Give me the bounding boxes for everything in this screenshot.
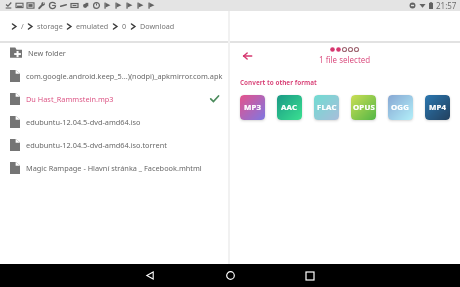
button[interactable]: Home xyxy=(190,264,270,287)
staticText: 1 file selected xyxy=(319,54,371,65)
button[interactable]: Back xyxy=(238,47,256,65)
staticText: emulated xyxy=(76,21,109,31)
button[interactable]: Du Hast_Rammstein.mp3 xyxy=(0,87,228,110)
button[interactable]: OGG xyxy=(388,95,413,120)
button[interactable]: Back xyxy=(110,264,190,287)
staticText: AAC xyxy=(281,102,298,113)
staticText: OPUS xyxy=(353,102,375,113)
staticText: Download xyxy=(140,21,175,31)
staticText: Du Hast_Rammstein.mp3 xyxy=(26,94,210,104)
staticText: MP4 xyxy=(429,102,447,113)
button[interactable]: AAC xyxy=(277,95,302,120)
button[interactable]: MP4 xyxy=(425,95,450,120)
button[interactable]: New folder xyxy=(0,41,228,64)
staticText: 0 xyxy=(122,21,127,31)
staticText: FLAC xyxy=(317,102,337,113)
staticText: Convert to other format xyxy=(240,78,317,87)
staticText: com.google.android.keep_5...)(nodpi)_apk… xyxy=(26,71,224,81)
staticText: edubuntu-12.04.5-dvd-amd64.iso xyxy=(26,117,224,127)
button[interactable]: FLAC xyxy=(314,95,339,120)
staticText: MP3 xyxy=(244,102,262,113)
button[interactable]: Recent apps xyxy=(270,264,350,287)
button[interactable]: Magic Rampage - Hlavní stránka _ Faceboo… xyxy=(0,156,228,179)
button[interactable]: com.google.android.keep_5...)(nodpi)_apk… xyxy=(0,64,228,87)
button[interactable]: edubuntu-12.04.5-dvd-amd64.iso xyxy=(0,110,228,133)
staticText: edubuntu-12.04.5-dvd-amd64.iso.torrent xyxy=(26,140,224,150)
staticText: / xyxy=(21,21,24,31)
staticText: OGG xyxy=(391,102,410,113)
staticText: 21:57 xyxy=(436,0,457,11)
button[interactable]: MP3 xyxy=(240,95,265,120)
staticText: storage xyxy=(37,21,63,31)
button[interactable]: OPUS xyxy=(351,95,376,120)
staticText: Magic Rampage - Hlavní stránka _ Faceboo… xyxy=(26,163,224,173)
button[interactable]: edubuntu-12.04.5-dvd-amd64.iso.torrent xyxy=(0,133,228,156)
staticText: New folder xyxy=(28,48,224,58)
